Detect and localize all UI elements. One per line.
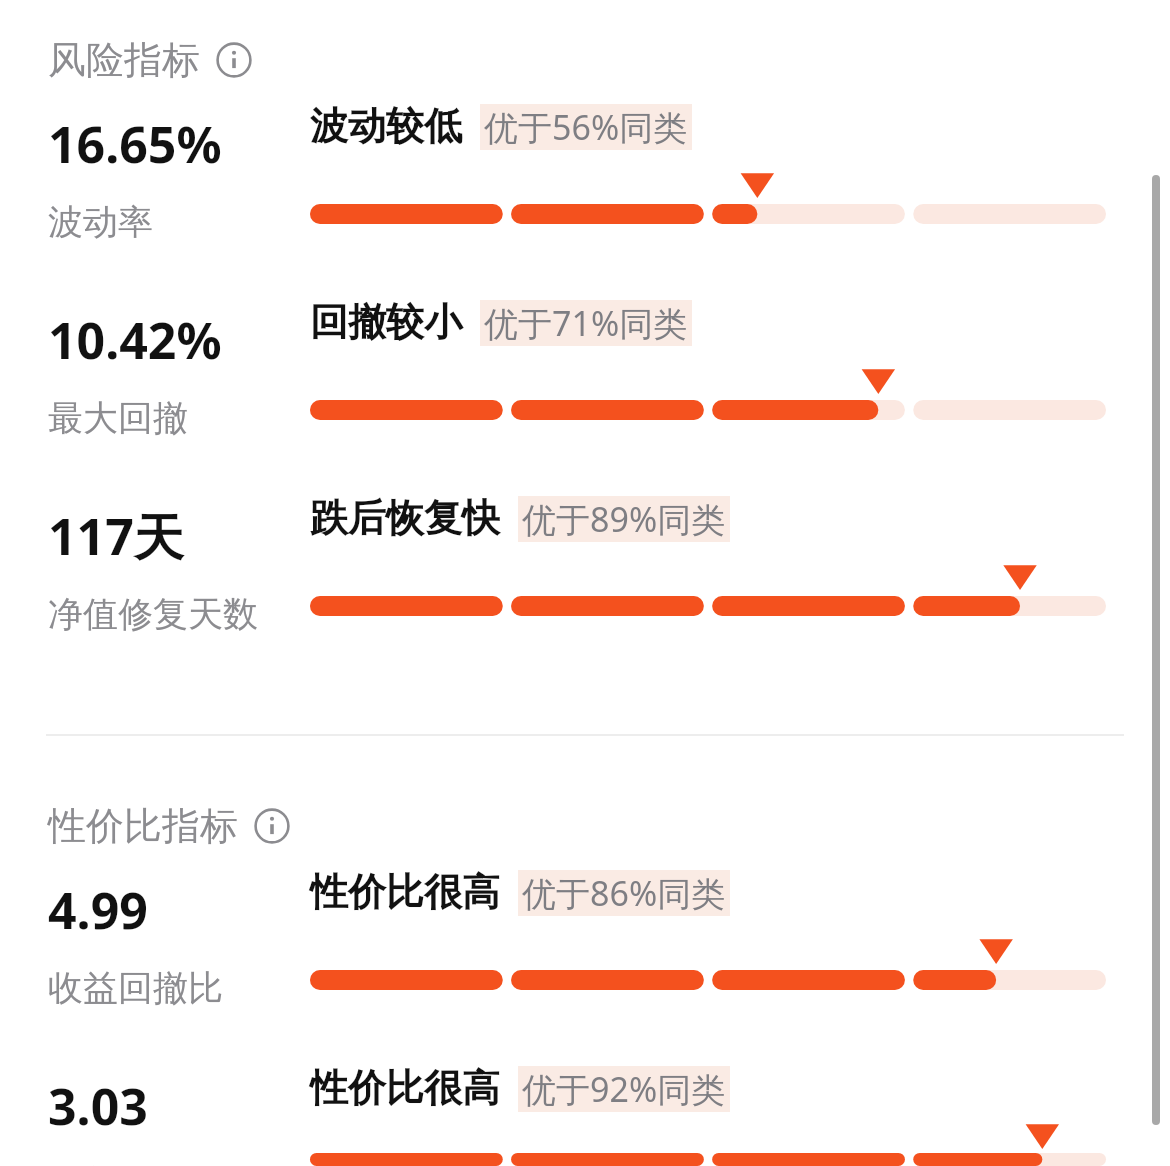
staticText: 性价比很高 (310, 1064, 500, 1112)
staticText: 优于86%同类 (522, 870, 726, 916)
staticText: 净值修复天数 (48, 592, 258, 636)
staticText: 优于89%同类 (522, 496, 726, 542)
staticText: 性价比很高 (310, 868, 500, 916)
staticText: 4.99 (48, 876, 148, 944)
other: 性价比指标说明 (254, 808, 290, 844)
staticText: 优于56%同类 (484, 104, 688, 150)
staticText: 117天 (48, 502, 184, 570)
button[interactable]: 性价比指标 (48, 802, 290, 850)
staticText: 跌后恢复快 (310, 494, 500, 542)
staticText: 16.65% (48, 110, 222, 178)
staticText: 最大回撤 (48, 396, 188, 440)
staticText: 10.42% (48, 306, 222, 374)
staticText: 风险指标 (48, 36, 200, 84)
staticText: 收益回撤比 (48, 966, 223, 1010)
staticText: 回撤较小 (310, 298, 462, 346)
button[interactable]: 16.65% (0, 102, 1170, 298)
button[interactable]: 4.99 (0, 868, 1170, 1064)
button[interactable]: 117天 (0, 494, 1170, 690)
staticText: 波动较低 (310, 102, 462, 150)
button[interactable]: 10.42% (0, 298, 1170, 494)
staticText: 波动率 (48, 200, 153, 244)
staticText: 性价比指标 (48, 802, 238, 850)
staticText: 3.03 (48, 1072, 148, 1140)
staticText: 优于71%同类 (484, 300, 688, 346)
button[interactable]: 风险指标 (48, 36, 252, 84)
other: 风险指标说明 (216, 42, 252, 78)
staticText: 优于92%同类 (522, 1066, 726, 1112)
button[interactable]: 3.03 (0, 1064, 1170, 1166)
